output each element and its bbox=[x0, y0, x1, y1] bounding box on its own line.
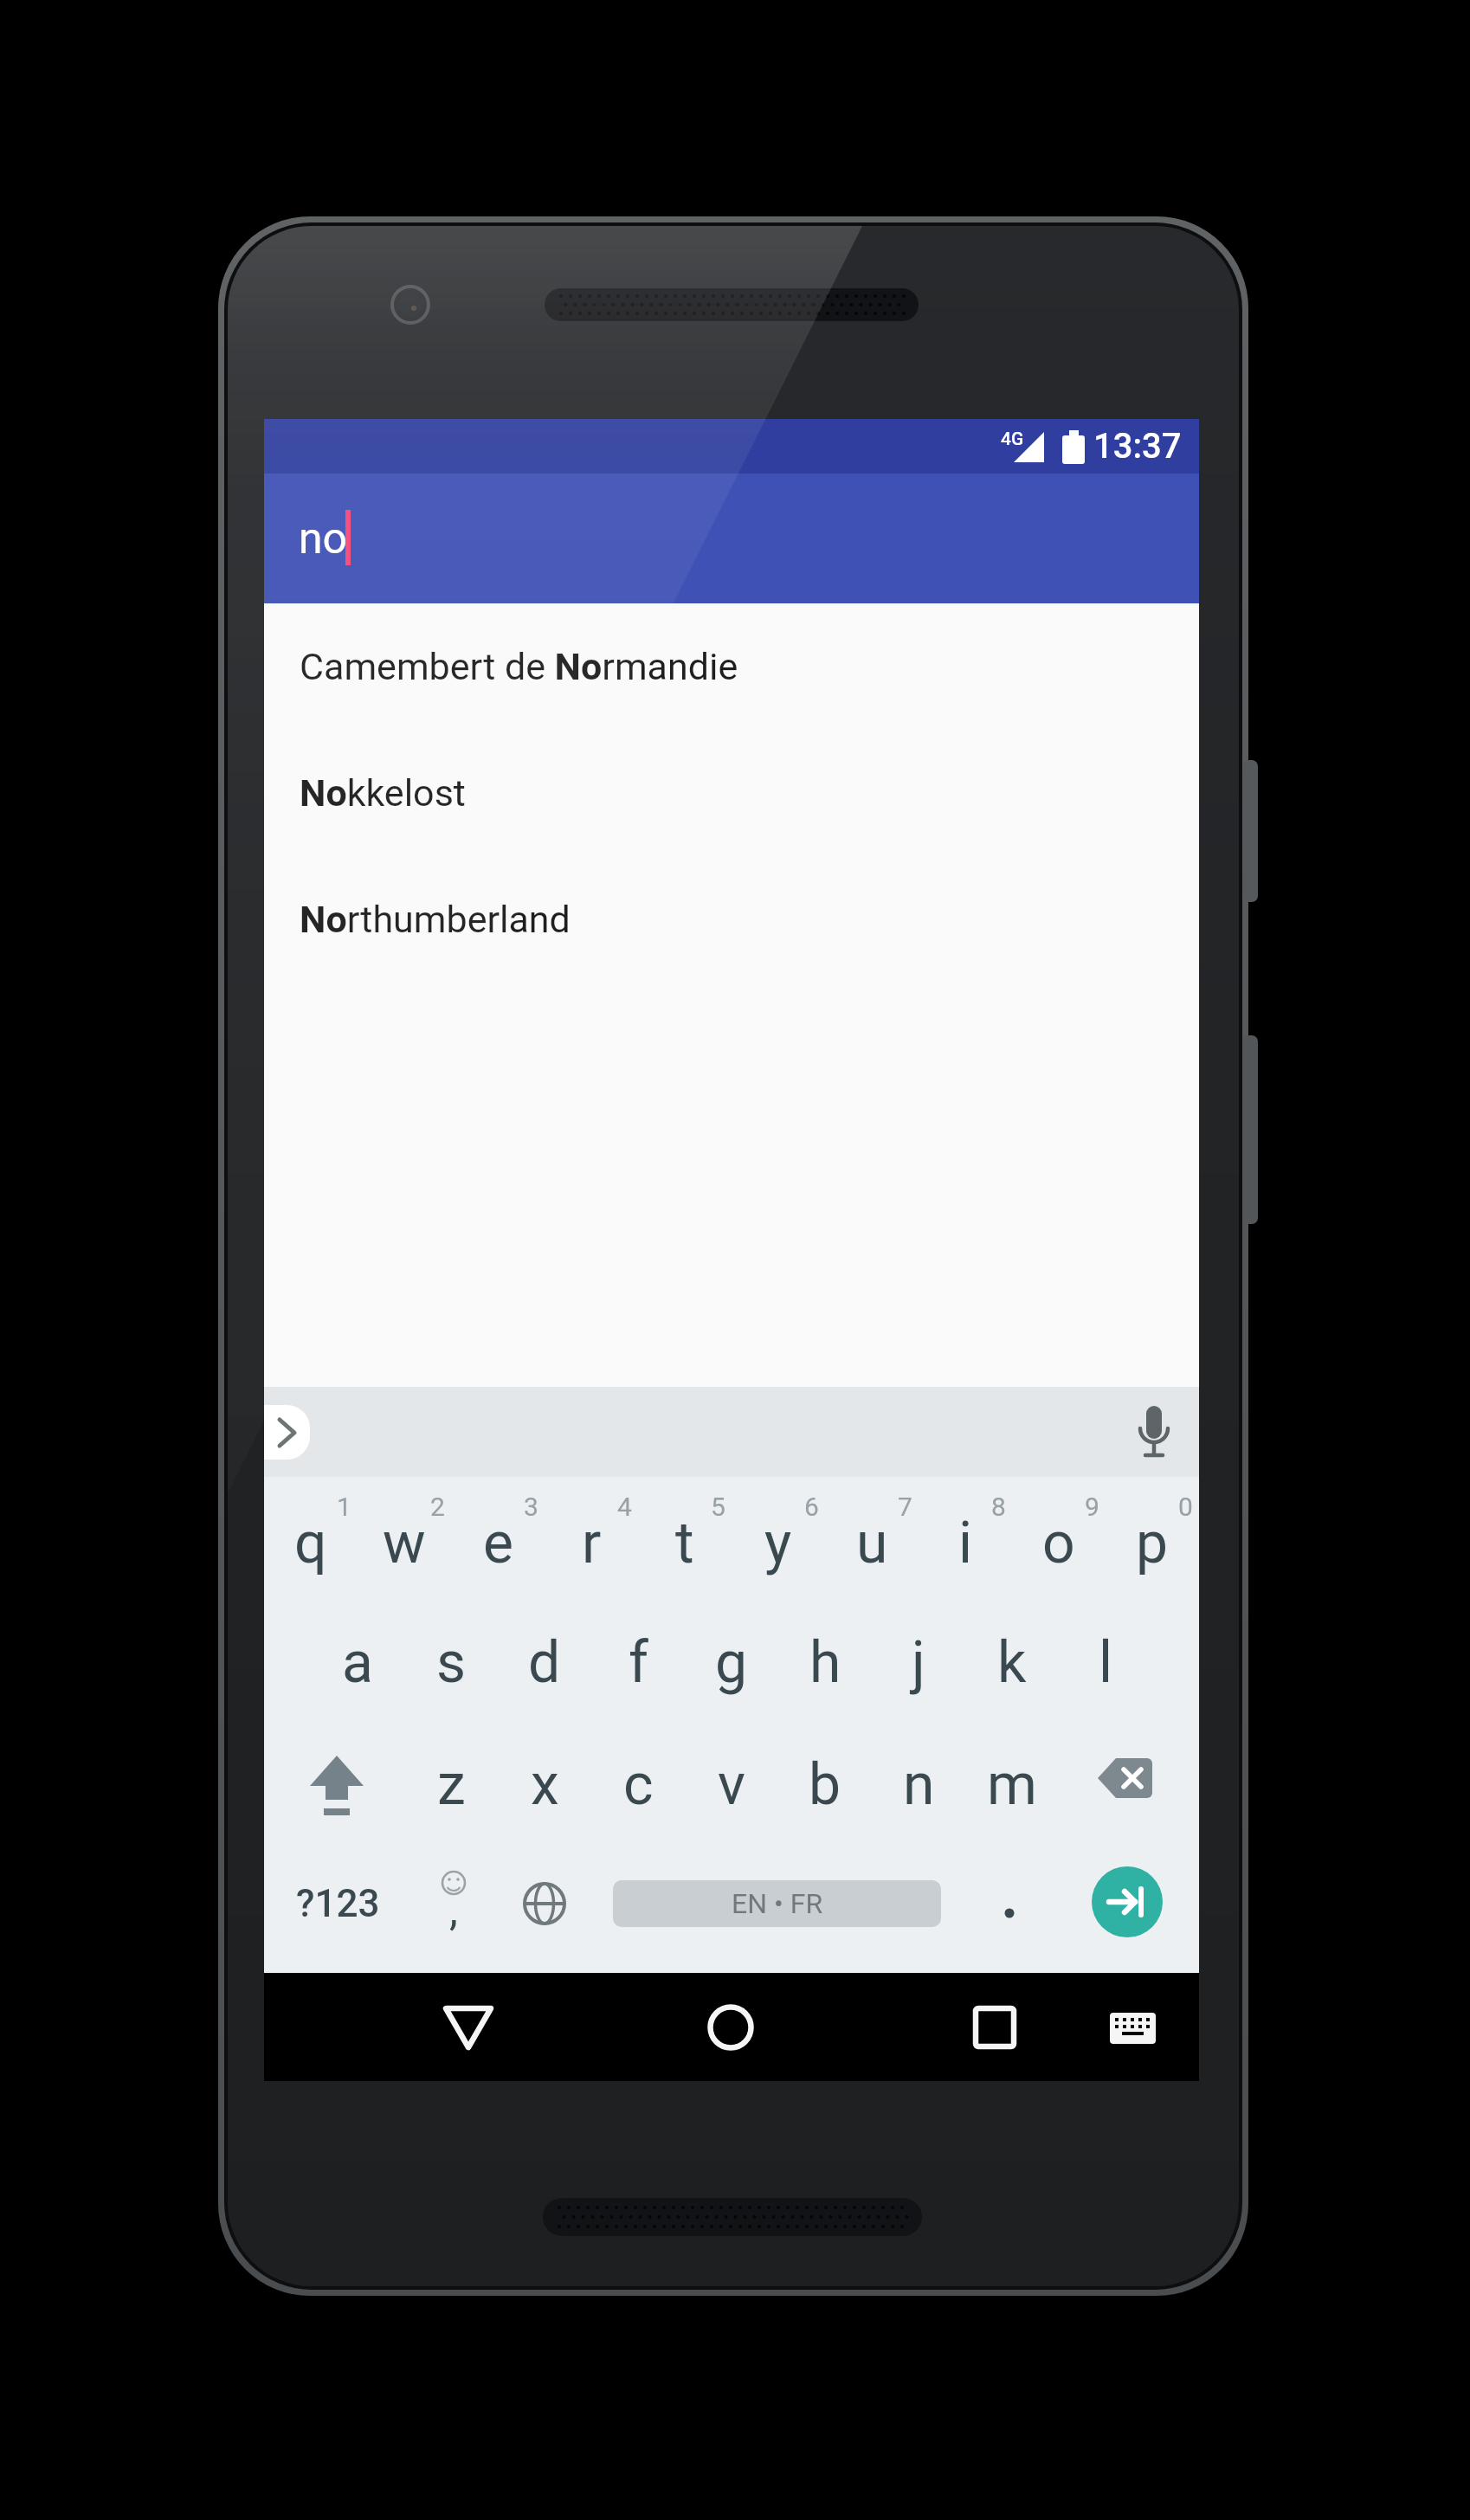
staticText: b bbox=[809, 1751, 841, 1818]
staticText: l bbox=[1099, 1629, 1113, 1696]
button[interactable]: q bbox=[264, 1481, 358, 1604]
button[interactable]: k bbox=[965, 1601, 1059, 1724]
button[interactable] bbox=[264, 1405, 310, 1460]
button[interactable]: u bbox=[825, 1481, 919, 1604]
staticText: , bbox=[449, 1885, 458, 1936]
staticText: 1 bbox=[337, 1492, 351, 1522]
button[interactable]: Northumberland bbox=[264, 856, 1199, 983]
button[interactable] bbox=[1088, 1982, 1179, 2072]
staticText: i bbox=[958, 1510, 973, 1576]
staticText: n bbox=[903, 1751, 935, 1818]
staticText: a bbox=[342, 1629, 373, 1696]
button[interactable]: Nokkelost bbox=[264, 730, 1199, 856]
staticText: z bbox=[437, 1751, 466, 1818]
staticText: 7 bbox=[898, 1492, 912, 1522]
button[interactable]: h bbox=[778, 1601, 872, 1724]
button[interactable]: ?123 bbox=[286, 1873, 390, 1934]
staticText: v bbox=[718, 1751, 745, 1818]
button[interactable]: t bbox=[638, 1481, 732, 1604]
button[interactable]: i bbox=[919, 1481, 1012, 1604]
button[interactable] bbox=[1092, 1866, 1163, 1937]
button[interactable]: e bbox=[451, 1481, 545, 1604]
button[interactable] bbox=[420, 1982, 515, 2072]
staticText: r bbox=[582, 1510, 602, 1576]
staticText: EN • FR bbox=[732, 1887, 823, 1920]
button[interactable]: v bbox=[685, 1723, 778, 1846]
button[interactable]: Camembert de Normandie bbox=[264, 603, 1199, 730]
staticText: s bbox=[436, 1629, 467, 1696]
button[interactable] bbox=[1082, 1735, 1177, 1834]
button[interactable] bbox=[290, 1735, 385, 1834]
staticText: 8 bbox=[991, 1492, 1006, 1522]
staticText: u bbox=[856, 1510, 888, 1576]
staticText: 2 bbox=[430, 1492, 445, 1522]
button[interactable]: b bbox=[778, 1723, 872, 1846]
staticText: c bbox=[623, 1751, 654, 1818]
button[interactable] bbox=[1125, 1397, 1186, 1466]
staticText: p bbox=[1136, 1510, 1169, 1576]
staticText: no bbox=[299, 513, 348, 564]
staticText: w bbox=[383, 1510, 426, 1576]
staticText: q bbox=[294, 1510, 327, 1576]
staticText: 9 bbox=[1085, 1492, 1099, 1522]
button[interactable]: g bbox=[685, 1601, 778, 1724]
button[interactable]: r bbox=[545, 1481, 638, 1604]
button[interactable]: s bbox=[404, 1601, 498, 1724]
button[interactable]: w bbox=[358, 1481, 451, 1604]
staticText: 3 bbox=[524, 1492, 538, 1522]
staticText: e bbox=[483, 1510, 513, 1576]
button[interactable]: f bbox=[591, 1601, 685, 1724]
staticText: x bbox=[531, 1751, 559, 1818]
staticText: h bbox=[809, 1629, 841, 1696]
staticText: Camembert de Normandie bbox=[300, 645, 738, 688]
staticText: Nokkelost bbox=[300, 771, 466, 815]
staticText: k bbox=[997, 1629, 1027, 1696]
staticText: y bbox=[764, 1510, 792, 1576]
button[interactable]: o bbox=[1012, 1481, 1106, 1604]
staticText: 5 bbox=[711, 1492, 725, 1522]
staticText: ?123 bbox=[296, 1881, 380, 1926]
staticText: Northumberland bbox=[300, 898, 571, 941]
button[interactable]: l bbox=[1059, 1601, 1152, 1724]
staticText: 0 bbox=[1178, 1492, 1193, 1522]
staticText: o bbox=[1042, 1510, 1075, 1576]
staticText: m bbox=[987, 1751, 1037, 1818]
button[interactable]: j bbox=[872, 1601, 965, 1724]
button[interactable]: n bbox=[872, 1723, 965, 1846]
button[interactable]: d bbox=[498, 1601, 591, 1724]
button[interactable]: p bbox=[1106, 1481, 1199, 1604]
button[interactable]: EN • FR bbox=[613, 1880, 941, 1927]
button[interactable] bbox=[946, 1982, 1041, 2072]
staticText: f bbox=[629, 1629, 648, 1696]
staticText: t bbox=[675, 1510, 694, 1576]
button[interactable]: m bbox=[965, 1723, 1059, 1846]
staticText: g bbox=[715, 1629, 748, 1696]
button[interactable]: z bbox=[404, 1723, 498, 1846]
button[interactable]: y bbox=[732, 1481, 825, 1604]
button[interactable]: c bbox=[591, 1723, 685, 1846]
staticText: 4G bbox=[1001, 429, 1024, 450]
staticText: j bbox=[912, 1629, 925, 1696]
staticText: 6 bbox=[804, 1492, 819, 1522]
button[interactable]: a bbox=[311, 1601, 404, 1724]
staticText: 13:37 bbox=[1093, 426, 1182, 467]
staticText: 4 bbox=[617, 1492, 632, 1522]
button[interactable] bbox=[683, 1982, 778, 2072]
staticText: d bbox=[528, 1629, 561, 1696]
button[interactable]: x bbox=[498, 1723, 591, 1846]
